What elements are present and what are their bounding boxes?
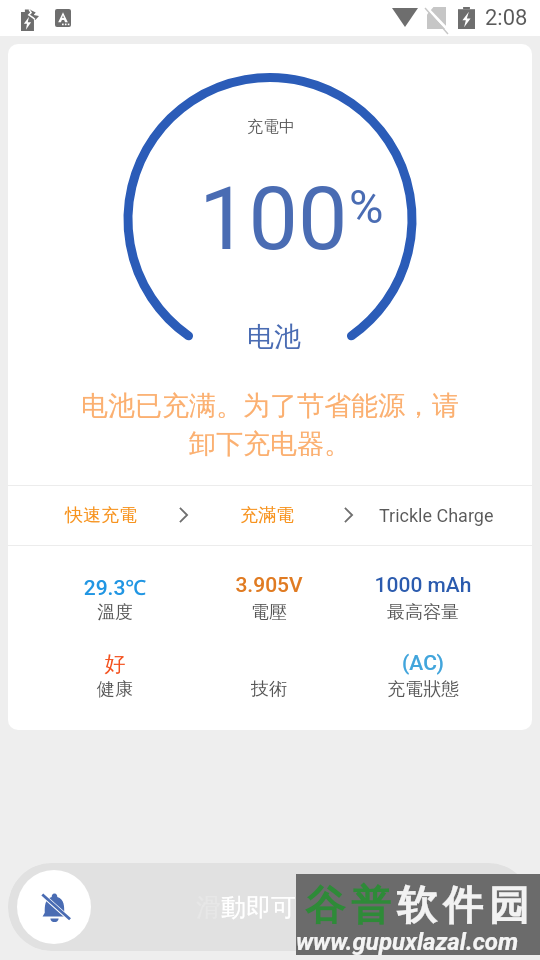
staticText: 健康 <box>38 678 192 701</box>
button[interactable]: 29.3℃ <box>38 573 192 627</box>
staticText: 1000 mAh <box>346 573 500 598</box>
staticText: 100 <box>199 167 348 270</box>
staticText: 好 <box>38 651 192 677</box>
button[interactable]: 充滿電 <box>193 486 357 545</box>
staticText: 溫度 <box>38 601 192 624</box>
staticText: 充電狀態 <box>346 678 500 701</box>
staticText: 电池 <box>247 320 301 354</box>
staticText: 充電中 <box>247 117 295 137</box>
staticText: 3.905V <box>192 573 346 598</box>
button[interactable]: 快速充電 <box>8 486 193 545</box>
staticText: % <box>349 179 384 234</box>
staticText: 快速充電 <box>65 504 137 527</box>
staticText: 卸下充电器。 <box>189 427 351 461</box>
staticText: 最高容量 <box>346 601 500 624</box>
staticText: (AC) <box>346 651 500 676</box>
button[interactable]: 技術 <box>192 651 346 704</box>
staticText: 谷普 <box>302 880 394 930</box>
staticText: 動即可解除靜音 <box>221 892 396 923</box>
button[interactable]: 好 <box>38 651 192 704</box>
staticText: Trickle Charge <box>379 505 494 526</box>
other: Mute notifications <box>17 870 91 944</box>
staticText: www.gupuxlazal.com <box>296 928 519 956</box>
button[interactable]: 3.905V <box>192 573 346 627</box>
button[interactable]: Trickle Charge <box>357 486 532 545</box>
staticText: 技術 <box>192 678 346 701</box>
button[interactable]: Mute notifications <box>8 863 532 951</box>
staticText: 電壓 <box>192 601 346 624</box>
button[interactable]: (AC) <box>346 651 500 704</box>
button[interactable]: 1000 mAh <box>346 573 500 627</box>
staticText: 电池已充满。为了节省能源，请 <box>81 389 459 423</box>
staticText: 软件园 <box>394 880 532 930</box>
staticText: 2:08 <box>485 5 528 31</box>
staticText: 29.3℃ <box>38 573 192 602</box>
staticText: 充滿電 <box>240 504 294 527</box>
